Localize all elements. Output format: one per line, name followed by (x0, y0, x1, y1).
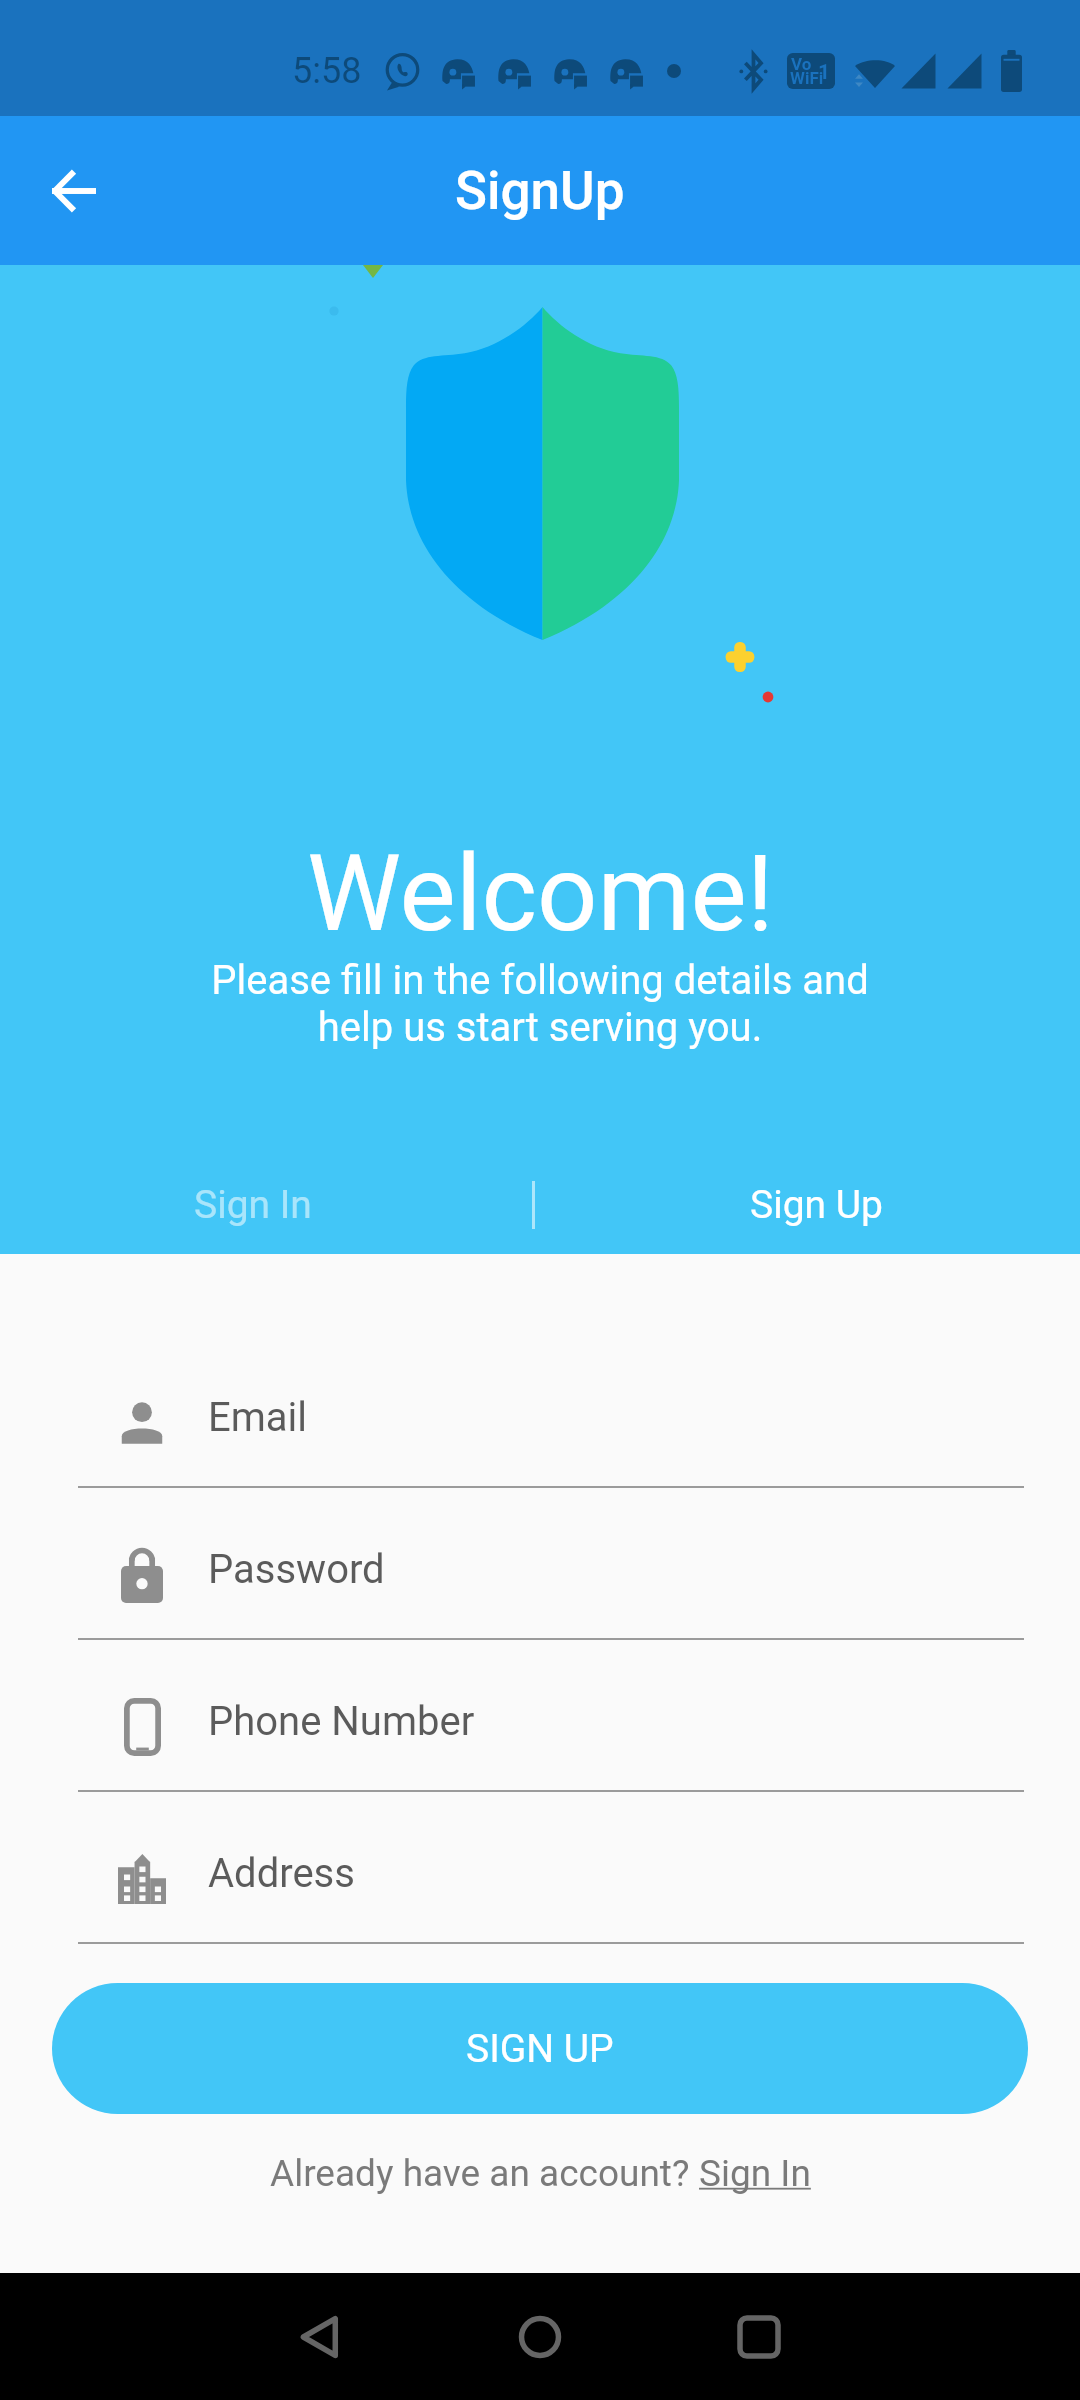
button[interactable]: Sign In (0, 1156, 532, 1254)
staticText: Password (208, 1546, 385, 1593)
staticText: Already have an account? (270, 2152, 699, 2195)
staticText: Please fill in the following details and… (211, 957, 869, 1051)
button[interactable]: Sign Up (535, 1156, 1080, 1254)
button[interactable]: Phone Number (0, 1665, 1080, 1817)
staticText: SignUp (455, 160, 625, 222)
button[interactable]: Back (273, 2289, 369, 2385)
staticText: WiFi (790, 68, 824, 88)
staticText: Phone Number (208, 1698, 475, 1745)
button[interactable]: Email (0, 1361, 1080, 1513)
staticText: Address (208, 1850, 355, 1897)
button[interactable]: Home (492, 2289, 588, 2385)
button[interactable]: Password (0, 1513, 1080, 1665)
staticText: 1 (818, 60, 831, 85)
button[interactable]: SIGN UP (52, 1983, 1028, 2114)
staticText: SIGN UP (466, 2026, 614, 2072)
staticText: Sign In (699, 2152, 811, 2195)
staticText: Sign Up (750, 1182, 883, 1228)
staticText: Welcome! (307, 832, 774, 956)
staticText: Sign In (194, 1182, 312, 1228)
button[interactable]: Recent apps (711, 2289, 807, 2385)
button[interactable]: Sign In (699, 2152, 811, 2195)
button[interactable]: Address (0, 1817, 1080, 1969)
staticText: 5:58 (292, 50, 362, 92)
button[interactable]: Back (20, 137, 127, 244)
staticText: Email (208, 1394, 308, 1441)
staticText: Vo (791, 54, 812, 74)
